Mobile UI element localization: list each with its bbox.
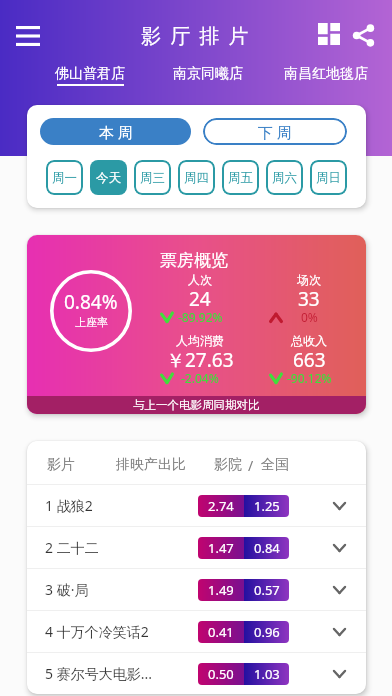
- button[interactable]: 周五: [222, 160, 259, 195]
- staticText: -2.04%: [181, 370, 219, 386]
- staticText: 0.41: [208, 623, 234, 641]
- button[interactable]: 1 战狼2: [27, 485, 366, 526]
- staticText: 人均消费: [176, 333, 224, 348]
- button[interactable]: 周六: [266, 160, 303, 195]
- staticText: 2.74: [208, 497, 234, 515]
- staticText: 1.25: [254, 497, 280, 515]
- button[interactable]: Expand: [319, 611, 359, 652]
- staticText: 南昌红地毯店: [284, 65, 368, 83]
- staticText: 与上一个电影周同期对比: [133, 398, 260, 412]
- button[interactable]: Expand: [319, 569, 359, 610]
- staticText: 3 破·局: [45, 580, 89, 599]
- button[interactable]: 周日: [310, 160, 347, 195]
- button[interactable]: Share: [344, 17, 383, 53]
- staticText: -90.12%: [287, 370, 332, 386]
- staticText: 今天: [96, 170, 121, 186]
- staticText: 0.96: [254, 623, 280, 641]
- staticText: 佛山普君店: [55, 65, 125, 83]
- button[interactable]: Grid view: [309, 16, 348, 52]
- staticText: 663: [293, 347, 326, 373]
- staticText: 1.49: [208, 581, 234, 599]
- staticText: 排映产出比: [116, 456, 186, 474]
- button[interactable]: 4 十万个冷笑话2: [27, 611, 366, 652]
- staticText: 2 二十二: [45, 538, 99, 557]
- button[interactable]: 佛山普君店: [38, 65, 142, 86]
- staticText: 影 厅 排 片: [141, 22, 251, 49]
- staticText: 周一: [52, 170, 77, 186]
- staticText: 人次: [188, 272, 212, 287]
- staticText: 影片: [47, 456, 75, 474]
- staticText: ￥27.63: [166, 347, 234, 373]
- staticText: 上座率: [75, 315, 108, 329]
- button[interactable]: 2 二十二: [27, 527, 366, 568]
- staticText: 0%: [301, 309, 318, 325]
- button[interactable]: 本 周: [40, 118, 191, 145]
- staticText: /: [248, 456, 254, 475]
- button[interactable]: 南昌红地毯店: [274, 65, 378, 84]
- staticText: 周四: [184, 170, 209, 186]
- staticText: 1 战狼2: [45, 496, 93, 515]
- button[interactable]: 下 周: [203, 118, 347, 145]
- staticText: 影院: [214, 456, 242, 474]
- button[interactable]: 今天: [90, 160, 127, 195]
- staticText: 24: [189, 286, 211, 312]
- button[interactable]: 周一: [46, 160, 83, 195]
- button[interactable]: Expand: [319, 527, 359, 568]
- button[interactable]: 5 赛尔号大电影...: [27, 653, 366, 694]
- staticText: 周三: [140, 170, 165, 186]
- button[interactable]: Menu: [7, 17, 49, 54]
- staticText: 5 赛尔号大电影...: [45, 664, 152, 683]
- staticText: 1.47: [208, 539, 234, 557]
- staticText: 4 十万个冷笑话2: [45, 622, 149, 641]
- button[interactable]: 3 破·局: [27, 569, 366, 610]
- staticText: 场次: [297, 272, 321, 287]
- staticText: 票房概览: [160, 250, 228, 271]
- staticText: 下 周: [258, 122, 292, 142]
- staticText: 33: [298, 286, 320, 312]
- staticText: 0.50: [208, 665, 234, 683]
- staticText: 总收入: [291, 333, 327, 348]
- button[interactable]: 南京同曦店: [156, 65, 260, 84]
- staticText: 全国: [261, 456, 289, 474]
- staticText: 1.03: [254, 665, 280, 683]
- staticText: 周五: [228, 170, 253, 186]
- button[interactable]: 周三: [134, 160, 171, 195]
- button[interactable]: Expand: [319, 485, 359, 526]
- staticText: 0.84%: [64, 289, 118, 315]
- staticText: 周日: [316, 170, 341, 186]
- staticText: 本 周: [99, 122, 133, 142]
- button[interactable]: Expand: [319, 653, 359, 694]
- staticText: 南京同曦店: [173, 65, 243, 83]
- staticText: 0.57: [254, 581, 280, 599]
- staticText: 周六: [272, 170, 297, 186]
- staticText: 0.84: [254, 539, 280, 557]
- button[interactable]: 周四: [178, 160, 215, 195]
- staticText: -89.92%: [178, 309, 223, 325]
